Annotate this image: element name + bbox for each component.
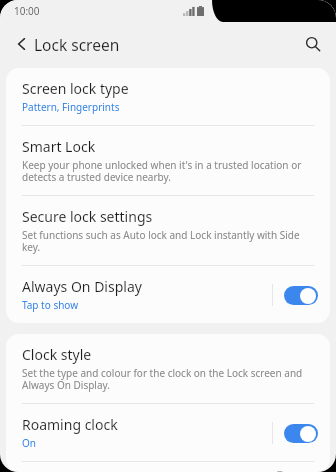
button[interactable]: Roaming clock — [6, 404, 330, 461]
staticText: Smart Lock — [22, 137, 96, 156]
staticText: Set functions such as Auto lock and Lock… — [22, 228, 318, 254]
button[interactable]: Back — [8, 30, 36, 58]
button[interactable]: Secure lock settings — [6, 196, 330, 265]
button[interactable]: Screen lock type — [6, 68, 330, 125]
staticText: Always On Display — [22, 277, 142, 296]
button[interactable]: Clock style — [6, 334, 330, 403]
staticText: Roaming clock — [22, 415, 118, 434]
button[interactable]: Always On Display — [6, 266, 330, 323]
staticText: Secure lock settings — [22, 207, 153, 226]
staticText: Set the type and colour for the clock on… — [22, 366, 318, 392]
staticText: Keep your phone unlocked when it's in a … — [22, 158, 318, 184]
staticText: Screen lock type — [22, 79, 129, 98]
staticText: On — [22, 436, 36, 450]
staticText: Clock style — [22, 345, 92, 364]
staticText: Pattern, Fingerprints — [22, 100, 120, 114]
button[interactable]: Smart Lock — [6, 126, 330, 195]
staticText: Tap to show — [22, 298, 79, 312]
button[interactable]: Toggle — [284, 424, 318, 443]
button[interactable]: Toggle — [284, 286, 318, 305]
staticText: Lock screen — [34, 34, 120, 55]
button[interactable]: Search — [298, 29, 328, 59]
staticText: 10:00 — [14, 4, 40, 18]
button[interactable]: FaceWidgets — [6, 462, 330, 472]
